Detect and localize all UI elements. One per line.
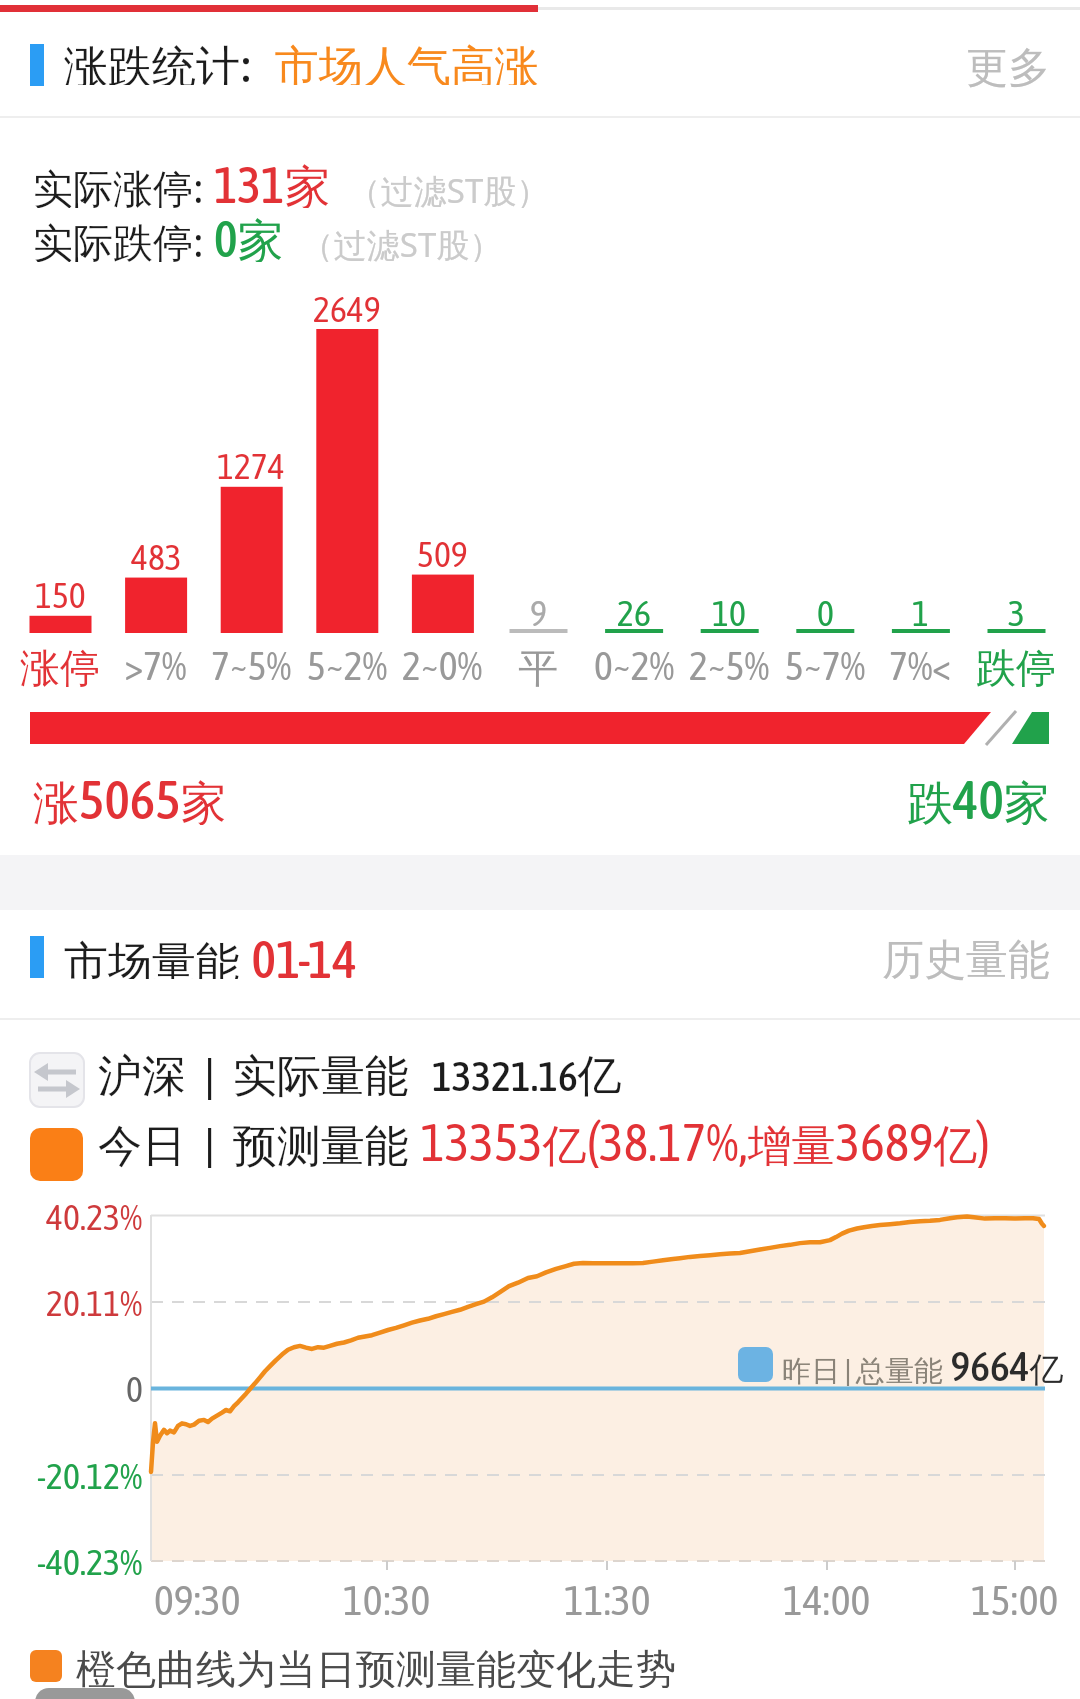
staticText: 今日 | 预测量能 13353亿(38.17%,增量3689亿) xyxy=(98,1112,990,1168)
staticText: 实际跌停: 0家 （过滤ST股） xyxy=(33,210,503,262)
staticText: 跌停 xyxy=(976,643,1056,687)
staticText: 平 xyxy=(518,643,558,687)
staticText: 10 xyxy=(712,592,746,633)
staticText: 2~0% xyxy=(402,643,483,687)
staticText: 0 xyxy=(126,1368,143,1408)
staticText: 昨日|总量能 9664亿 xyxy=(782,1342,1064,1386)
staticText: 2649 xyxy=(313,288,381,329)
staticText: 0~2% xyxy=(594,643,675,687)
staticText: 150 xyxy=(35,574,86,615)
staticText: -40.23% xyxy=(37,1541,143,1581)
staticText: 涨5065家 xyxy=(33,769,227,825)
staticText: 7%< xyxy=(889,643,951,687)
staticText: 9 xyxy=(530,592,547,633)
button[interactable]: 更多 xyxy=(930,42,1050,88)
staticText: 14:00 xyxy=(783,1576,871,1620)
staticText: 20.11% xyxy=(46,1282,143,1322)
staticText: 橙色曲线为当日预测量能变化走势 xyxy=(76,1644,676,1688)
staticText: 5~2% xyxy=(307,643,388,687)
staticText: -20.12% xyxy=(37,1455,143,1495)
staticText: >7% xyxy=(125,643,187,687)
staticText: 3 xyxy=(1008,592,1025,633)
staticText: 7~5% xyxy=(211,643,292,687)
staticText: 0 xyxy=(817,592,834,633)
staticText: 11:30 xyxy=(564,1576,651,1620)
staticText: 1274 xyxy=(217,445,285,486)
staticText: 实际涨停: 131家 （过滤ST股） xyxy=(33,156,550,208)
button[interactable]: 历史量能 xyxy=(780,934,1050,982)
staticText: 1 xyxy=(912,592,929,633)
staticText: 更多 xyxy=(966,42,1050,88)
staticText: 2~5% xyxy=(689,643,770,687)
staticText: 5~7% xyxy=(785,643,866,687)
staticText: 40.23% xyxy=(46,1196,143,1236)
staticText: 509 xyxy=(417,533,468,574)
staticText: 市场量能 01-14 xyxy=(64,929,358,979)
staticText: 涨停 xyxy=(20,643,100,687)
staticText: 跌40家 xyxy=(907,769,1050,825)
staticText: 沪深 | 实际量能 13321.16亿 xyxy=(98,1044,622,1100)
staticText: 历史量能 xyxy=(882,934,1050,982)
staticText: 09:30 xyxy=(154,1576,241,1620)
staticText: 10:30 xyxy=(343,1576,431,1620)
staticText: 26 xyxy=(617,592,651,633)
staticText: 483 xyxy=(131,536,182,577)
staticText: 涨跌统计: 市场人气高涨 xyxy=(64,35,539,85)
staticText: 15:00 xyxy=(971,1576,1059,1620)
